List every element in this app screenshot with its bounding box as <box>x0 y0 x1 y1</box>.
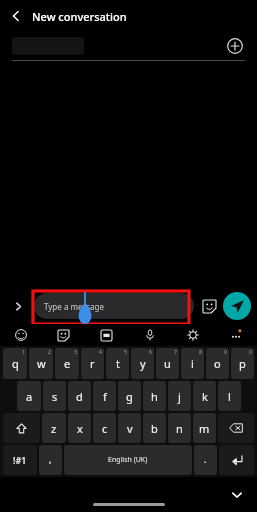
staticText: 6 <box>149 349 152 356</box>
staticText: p <box>239 356 246 371</box>
staticText: y <box>140 356 146 371</box>
staticText: n <box>176 421 183 436</box>
button[interactable]: d <box>68 381 91 411</box>
staticText: l <box>228 389 231 404</box>
staticText: 4 <box>99 349 102 356</box>
staticText: 9 <box>224 349 227 356</box>
staticText: 2 <box>48 349 51 356</box>
button[interactable]: English (UK) <box>64 445 192 475</box>
button[interactable]: q <box>3 348 27 379</box>
button[interactable]: p <box>231 348 254 379</box>
button[interactable]: More options <box>214 324 257 346</box>
button[interactable]: Hide keyboard <box>227 485 247 505</box>
staticText: d <box>76 389 83 404</box>
staticText: x <box>77 421 83 436</box>
button[interactable]: a <box>17 381 41 411</box>
staticText: , <box>49 453 52 465</box>
button[interactable]: u <box>156 348 179 379</box>
button[interactable]: , <box>39 445 62 475</box>
button[interactable]: Shift <box>3 413 40 443</box>
button[interactable]: Voice input <box>128 324 171 346</box>
button[interactable]: Emoji <box>0 324 42 346</box>
button[interactable]: GIF <box>85 324 128 346</box>
button[interactable]: j <box>168 381 191 411</box>
button[interactable]: Type a message <box>34 293 194 319</box>
staticText: j <box>178 389 181 404</box>
button[interactable]: i <box>181 348 204 379</box>
staticText: w <box>37 356 46 371</box>
button[interactable]: c <box>93 413 116 443</box>
button[interactable]: Back <box>0 0 32 32</box>
staticText: 8 <box>199 349 202 356</box>
button[interactable]: Stickers <box>42 324 85 346</box>
staticText: k <box>202 389 208 404</box>
button[interactable]: Add recipient <box>222 33 248 59</box>
staticText: i <box>191 356 194 371</box>
staticText: 3 <box>74 349 77 356</box>
staticText: h <box>151 389 158 404</box>
button[interactable]: w <box>29 348 53 379</box>
staticText: 0 <box>249 349 252 356</box>
button[interactable]: v <box>118 413 141 443</box>
button[interactable]: e <box>55 348 79 379</box>
button[interactable]: Send <box>223 292 251 320</box>
staticText: f <box>103 389 107 404</box>
button[interactable]: !#1 <box>3 445 37 475</box>
button[interactable]: Enter <box>219 445 254 475</box>
button[interactable]: Backspace <box>218 413 254 443</box>
staticText: z <box>51 421 57 436</box>
button[interactable]: . <box>194 445 217 475</box>
button[interactable]: t <box>106 348 129 379</box>
staticText: b <box>151 421 158 436</box>
staticText: o <box>214 356 221 371</box>
button[interactable]: m <box>193 413 216 443</box>
button[interactable]: Settings <box>171 324 214 346</box>
staticText: q <box>12 356 19 371</box>
staticText: !#1 <box>13 454 27 466</box>
button[interactable]: Stickers <box>198 295 220 317</box>
staticText: e <box>64 356 71 371</box>
button[interactable]: Expand <box>8 296 28 316</box>
staticText: u <box>164 356 171 371</box>
staticText: English (UK) <box>108 455 148 465</box>
staticText: t <box>116 356 120 371</box>
button[interactable]: y <box>131 348 154 379</box>
button[interactable]: h <box>143 381 166 411</box>
staticText: a <box>26 389 33 404</box>
button[interactable]: o <box>206 348 229 379</box>
staticText: Type a message <box>44 301 105 312</box>
button[interactable]: l <box>218 381 241 411</box>
staticText: g <box>126 389 133 404</box>
button[interactable]: s <box>43 381 66 411</box>
staticText: New conversation <box>32 9 127 24</box>
staticText: 7 <box>174 349 177 356</box>
staticText: 1 <box>22 349 25 356</box>
staticText: r <box>90 356 95 371</box>
button[interactable]: k <box>193 381 216 411</box>
button[interactable]: n <box>168 413 191 443</box>
button[interactable]: x <box>68 413 91 443</box>
button[interactable]: z <box>42 413 66 443</box>
staticText: 5 <box>124 349 127 356</box>
button[interactable]: r <box>81 348 104 379</box>
staticText: v <box>127 421 133 436</box>
staticText: s <box>52 389 58 404</box>
button[interactable]: g <box>118 381 141 411</box>
button[interactable]: f <box>93 381 116 411</box>
staticText: c <box>102 421 108 436</box>
button[interactable]: b <box>143 413 166 443</box>
staticText: m <box>199 421 210 436</box>
staticText: . <box>204 453 207 465</box>
